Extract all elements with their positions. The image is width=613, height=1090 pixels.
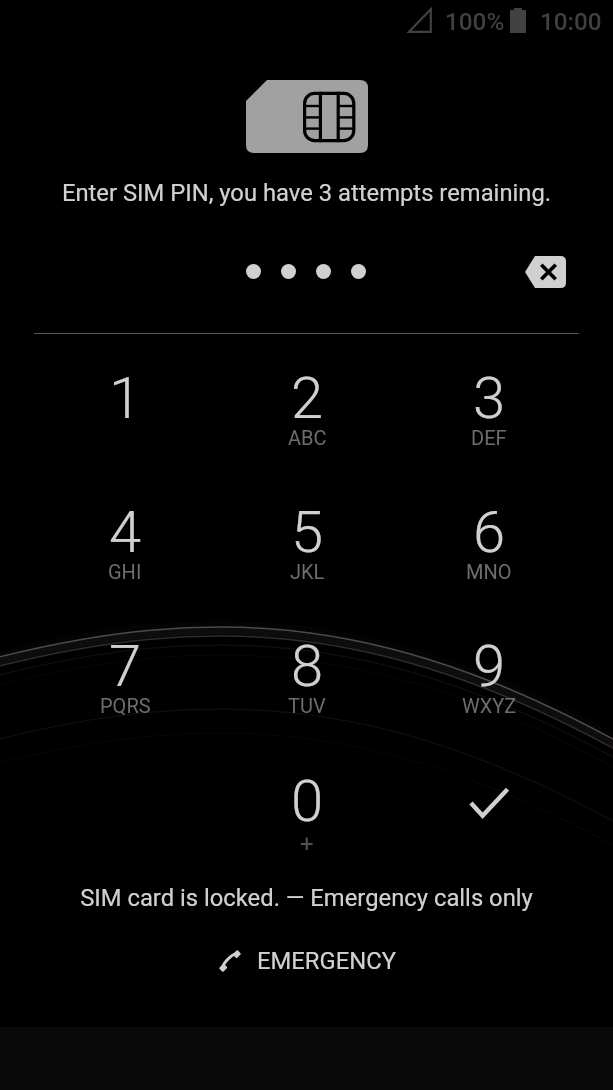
button[interactable]: 9 [417, 604, 561, 732]
staticText: 10:00 [540, 7, 602, 35]
button[interactable]: 6 [417, 470, 561, 598]
staticText: JKL [290, 560, 325, 583]
staticText: Enter SIM PIN, you have 3 attempts remai… [0, 179, 613, 207]
button[interactable]: 7 [53, 604, 197, 732]
staticText: PQRS [100, 694, 151, 717]
button[interactable]: 3 [417, 336, 561, 464]
staticText: 100% [445, 7, 505, 35]
button[interactable]: 5 [235, 470, 379, 598]
button[interactable]: 8 [235, 604, 379, 732]
staticText: 8 [291, 632, 324, 700]
staticText: 6 [473, 498, 506, 566]
staticText: 0 [291, 767, 324, 835]
staticText: ABC [288, 426, 327, 449]
staticText: 9 [473, 632, 506, 700]
button[interactable]: 1 [53, 336, 197, 464]
staticText: GHI [108, 560, 142, 583]
staticText: 4 [109, 498, 142, 566]
button[interactable]: 4 [53, 470, 197, 598]
staticText: 7 [109, 632, 142, 700]
staticText: WXYZ [462, 694, 517, 717]
staticText: MNO [466, 560, 512, 583]
button[interactable]: 2 [235, 336, 379, 464]
staticText: EMERGENCY [257, 947, 396, 975]
staticText: DEF [471, 426, 507, 449]
staticText: 3 [473, 364, 506, 432]
staticText: + [300, 830, 314, 858]
staticText: SIM card is locked. — Emergency calls on… [0, 884, 613, 912]
button[interactable]: Confirm PIN [429, 746, 549, 856]
staticText: 1 [109, 364, 142, 432]
button[interactable]: Delete [505, 242, 585, 302]
staticText: 5 [291, 498, 324, 566]
button[interactable]: 0 [235, 739, 379, 867]
staticText: TUV [288, 694, 326, 717]
staticText: 2 [291, 364, 324, 432]
button[interactable]: EMERGENCY [207, 935, 405, 987]
